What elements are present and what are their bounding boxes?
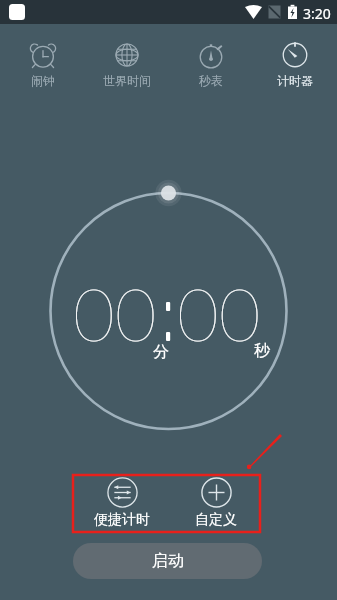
button[interactable]: 世界时间 [85,24,169,88]
staticText: 世界时间 [103,73,151,88]
staticText: 计时器 [277,73,313,88]
button[interactable]: 秒表 [169,24,253,88]
staticText: 3:20 [303,4,331,23]
staticText: 00 [73,270,157,356]
button[interactable]: 启动 [73,543,262,579]
button[interactable]: 闹钟 [0,24,85,88]
button[interactable]: 计时器 [253,24,337,88]
staticText: 秒表 [199,73,223,88]
button[interactable]: 自定义 [188,477,244,529]
staticText: 闹钟 [31,73,55,88]
staticText: 分 [153,342,169,362]
staticText: 启动 [152,551,184,571]
staticText: 便捷计时 [94,511,150,529]
button[interactable]: 便捷计时 [94,477,150,529]
staticText: 自定义 [195,511,237,529]
staticText: 00 [177,270,261,356]
staticText: 秒 [254,341,270,361]
